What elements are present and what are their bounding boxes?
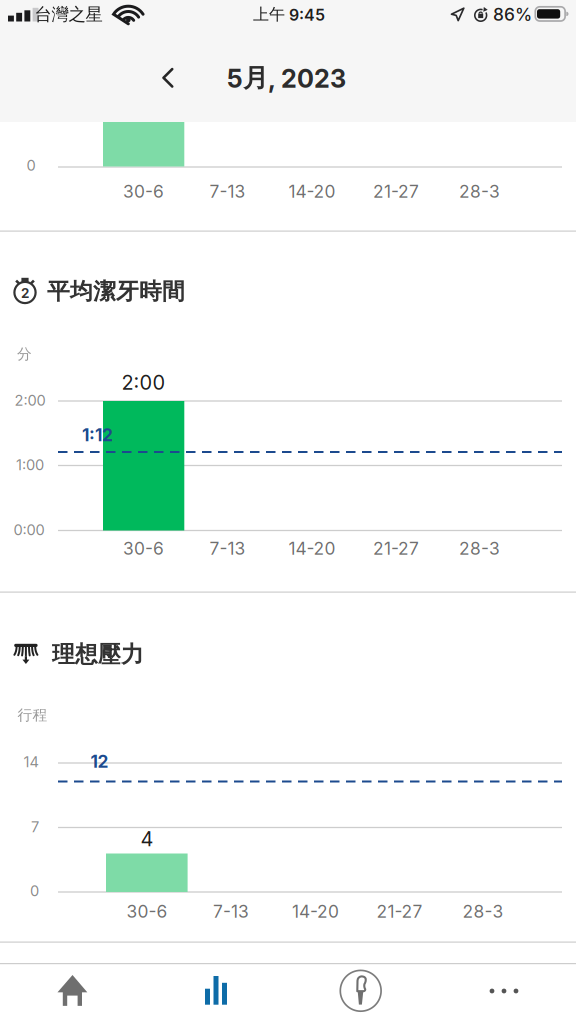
button[interactable] [144, 963, 288, 1024]
staticText: 平均潔牙時間 [47, 278, 185, 305]
staticText: 30-6 [126, 901, 167, 922]
staticText: 5月, 2023 [227, 62, 346, 93]
staticText: 21-27 [376, 901, 422, 922]
staticText: 14-20 [288, 538, 335, 559]
staticText: 14-20 [288, 181, 335, 202]
button[interactable] [432, 963, 576, 1024]
staticText: 7-13 [209, 181, 245, 202]
staticText: 7-13 [209, 538, 245, 559]
staticText: 7-13 [213, 901, 249, 922]
staticText: 2:00 [14, 392, 45, 409]
staticText: 行程 [17, 706, 47, 724]
staticText: 12 [90, 751, 108, 772]
staticText: 0 [26, 157, 35, 174]
staticText: 30-6 [123, 538, 164, 559]
button[interactable] [288, 963, 432, 1024]
staticText: 1:12 [82, 425, 113, 445]
staticText: 理想壓力 [52, 641, 144, 668]
staticText: 14 [23, 753, 38, 771]
staticText: 14-20 [292, 901, 339, 922]
staticText: 分 [17, 345, 32, 363]
staticText: 台灣之星 [34, 4, 102, 25]
staticText: 2 [21, 285, 29, 301]
staticText: 1:00 [16, 456, 44, 474]
staticText: 28-3 [462, 901, 503, 922]
staticText: 30-6 [123, 181, 164, 202]
staticText: 2:00 [121, 371, 165, 394]
staticText: 21-27 [373, 181, 419, 202]
staticText: 0:00 [13, 521, 44, 539]
staticText: 4 [140, 827, 153, 851]
button[interactable] [146, 56, 190, 100]
staticText: 28-3 [459, 538, 500, 559]
staticText: 21-27 [373, 538, 419, 559]
staticText: 28-3 [459, 181, 500, 202]
staticText: 上午 9:45 [253, 5, 325, 24]
staticText: 7 [31, 818, 39, 836]
button[interactable] [0, 963, 144, 1024]
staticText: 0 [30, 882, 39, 900]
staticText: 86% [493, 4, 532, 25]
